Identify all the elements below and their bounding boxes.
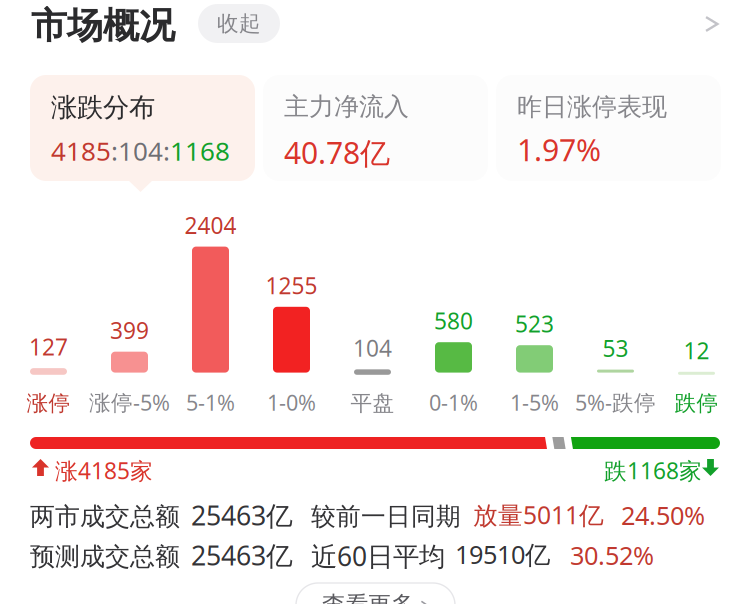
staticText: 涨停 bbox=[26, 390, 70, 417]
staticText: 25463亿 bbox=[191, 497, 293, 533]
staticText: 昨日涨停表现 bbox=[517, 91, 667, 123]
staticText: 5%-跌停 bbox=[575, 388, 656, 417]
button[interactable]: 主力净流入 bbox=[263, 75, 488, 181]
staticText: 预测成交总额 bbox=[30, 541, 180, 572]
staticText: :104: bbox=[111, 133, 170, 168]
staticText: 查看更多 bbox=[322, 590, 414, 604]
staticText: 1255 bbox=[265, 270, 317, 301]
staticText: 0-1% bbox=[429, 388, 478, 417]
staticText: 1-0% bbox=[267, 388, 316, 417]
staticText: 涨停-5% bbox=[89, 388, 170, 417]
button[interactable]: 收起 bbox=[198, 4, 280, 43]
staticText: 近60日平均 bbox=[311, 538, 445, 574]
staticText: 两市成交总额 bbox=[30, 501, 180, 532]
staticText: 30.52% bbox=[570, 538, 654, 572]
button[interactable]: 展开市场概况 bbox=[701, 9, 722, 39]
staticText: 1-5% bbox=[510, 388, 559, 417]
staticText: 较前一日同期 bbox=[311, 501, 461, 532]
staticText: 涨跌分布 bbox=[51, 91, 155, 124]
staticText: 涨4185家 bbox=[55, 455, 153, 486]
button[interactable]: 查看更多 bbox=[296, 583, 455, 604]
button[interactable]: 涨跌分布 bbox=[30, 75, 255, 181]
button[interactable]: 昨日涨停表现 bbox=[496, 75, 721, 181]
staticText: 523 bbox=[515, 308, 554, 339]
staticText: 2404 bbox=[184, 210, 236, 241]
staticText: 跌1168家 bbox=[604, 455, 702, 486]
staticText: 19510亿 bbox=[455, 537, 550, 571]
staticText: 580 bbox=[434, 305, 473, 336]
staticText: 40.78亿 bbox=[284, 132, 390, 173]
staticText: 25463亿 bbox=[191, 537, 293, 573]
staticText: 5-1% bbox=[186, 388, 235, 417]
staticText: 放量5011亿 bbox=[473, 498, 604, 532]
staticText: 平盘 bbox=[350, 390, 394, 417]
staticText: 主力净流入 bbox=[284, 91, 409, 122]
staticText: 53 bbox=[602, 333, 628, 364]
staticText: 104 bbox=[353, 332, 392, 363]
staticText: 399 bbox=[110, 315, 149, 346]
staticText: 24.50% bbox=[621, 498, 705, 532]
staticText: 127 bbox=[29, 331, 68, 362]
staticText: 4185 bbox=[51, 133, 111, 168]
staticText: 12 bbox=[683, 335, 709, 366]
staticText: 1.97% bbox=[517, 129, 601, 170]
staticText: 跌停 bbox=[674, 390, 718, 417]
staticText: 收起 bbox=[217, 10, 261, 37]
staticText: 1168 bbox=[170, 133, 230, 168]
staticText: 市场概况 bbox=[31, 3, 175, 48]
